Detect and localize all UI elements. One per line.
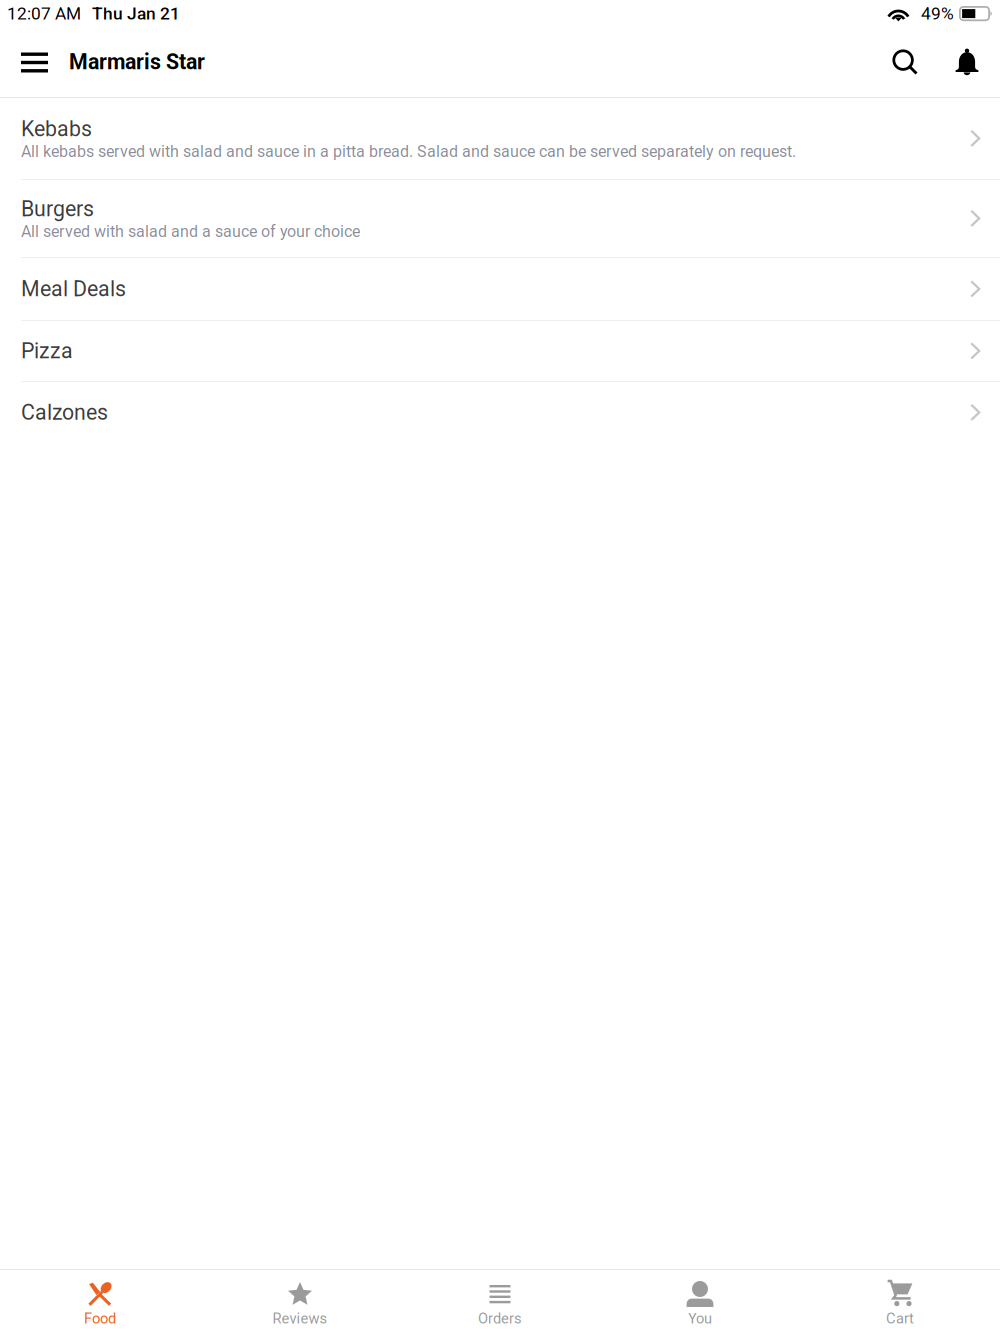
staticText: Kebabs: [21, 116, 92, 141]
staticText: Marmaris Star: [69, 49, 205, 74]
button[interactable]: Cart: [800, 1270, 1000, 1334]
button[interactable]: Notifications: [936, 27, 998, 97]
staticText: Orders: [478, 1310, 522, 1327]
staticText: Burgers: [21, 196, 94, 221]
button[interactable]: Kebabs: [0, 98, 1000, 179]
staticText: Thu Jan 21: [92, 3, 180, 24]
staticText: All served with salad and a sauce of you…: [21, 222, 360, 241]
staticText: Reviews: [272, 1310, 327, 1327]
button[interactable]: Meal Deals: [0, 258, 1000, 320]
button[interactable]: Pizza: [0, 321, 1000, 381]
staticText: You: [688, 1310, 712, 1327]
staticText: 12:07 AM: [7, 3, 81, 24]
button[interactable]: You: [600, 1270, 800, 1334]
button[interactable]: Food: [0, 1270, 200, 1334]
button[interactable]: Burgers: [0, 180, 1000, 257]
button[interactable]: Reviews: [200, 1270, 400, 1334]
staticText: Meal Deals: [21, 276, 126, 301]
staticText: 49%: [921, 3, 954, 24]
button[interactable]: Orders: [400, 1270, 600, 1334]
staticText: All kebabs served with salad and sauce i…: [21, 142, 796, 161]
staticText: Food: [84, 1310, 116, 1327]
button[interactable]: Search: [874, 27, 936, 97]
staticText: Pizza: [21, 338, 73, 363]
staticText: Calzones: [21, 400, 108, 425]
button[interactable]: Menu: [0, 27, 69, 97]
button[interactable]: Calzones: [0, 382, 1000, 443]
staticText: Cart: [886, 1310, 914, 1327]
